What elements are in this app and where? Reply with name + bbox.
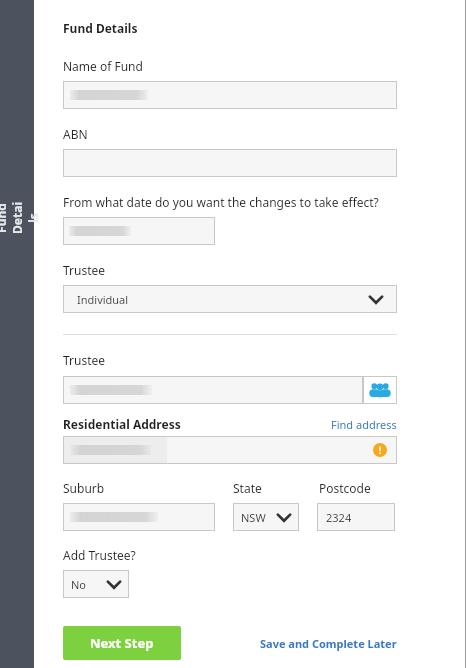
staticText: From what date do you want the changes t… — [63, 194, 379, 210]
button[interactable]: Find address — [331, 417, 397, 432]
staticText: NSW — [241, 510, 266, 525]
staticText: Find address — [331, 417, 397, 432]
staticText: 2324 — [326, 510, 352, 525]
button[interactable] — [63, 376, 363, 404]
button[interactable] — [63, 149, 397, 177]
staticText: Trustee — [63, 262, 106, 278]
staticText: Residential Address — [63, 416, 181, 432]
button[interactable] — [63, 503, 215, 531]
staticText: Next Step — [90, 634, 154, 652]
staticText: Trustee — [63, 352, 106, 368]
staticText: Individual — [77, 292, 129, 307]
button[interactable]: 2324 — [317, 503, 395, 531]
staticText: Fund Details — [63, 20, 138, 36]
button[interactable]: Save and Complete Later — [260, 636, 397, 651]
staticText: Save and Complete Later — [260, 636, 397, 651]
button[interactable]: Fund Details section — [0, 0, 34, 668]
staticText: No — [71, 577, 87, 592]
button[interactable]: Select trustee from contacts — [363, 376, 397, 404]
button[interactable]: No — [63, 570, 129, 598]
button[interactable] — [63, 436, 397, 464]
staticText: State — [233, 480, 262, 496]
button[interactable]: Individual — [63, 285, 397, 313]
button[interactable]: NSW — [233, 503, 299, 531]
staticText: Fund Details — [0, 201, 41, 235]
staticText: Suburb — [63, 480, 105, 496]
staticText: Postcode — [319, 480, 371, 496]
staticText: ABN — [63, 126, 88, 142]
button[interactable] — [63, 81, 397, 109]
button[interactable]: Next Step — [63, 626, 181, 660]
staticText: Name of Fund — [63, 58, 143, 74]
staticText: Add Trustee? — [63, 547, 136, 563]
button[interactable] — [63, 217, 215, 245]
